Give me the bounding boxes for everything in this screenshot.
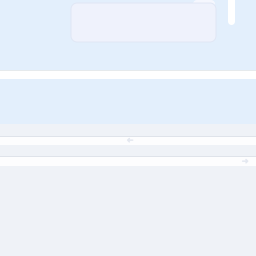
button[interactable]: Back [0,136,256,145]
button[interactable]: Forward [0,156,256,166]
